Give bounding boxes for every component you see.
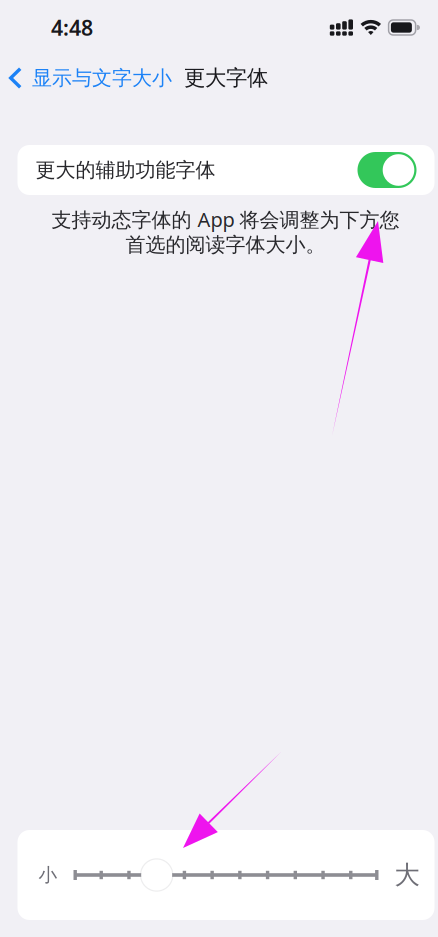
staticText: 更大字体 xyxy=(184,65,268,91)
button[interactable]: 更大的辅助功能字体 xyxy=(17,145,434,195)
staticText: 小 xyxy=(38,863,57,886)
button[interactable]: 显示与文字大小 xyxy=(0,56,178,100)
staticText: 首选的阅读字体大小。 xyxy=(125,233,325,257)
staticText: 大 xyxy=(394,859,419,890)
staticText: 4:48 xyxy=(51,13,93,42)
staticText: 显示与文字大小 xyxy=(32,66,172,90)
staticText: 支持动态字体的 App 将会调整为下方您 xyxy=(51,206,399,233)
button[interactable]: 更大的辅助功能字体 xyxy=(357,152,416,188)
staticText: 更大的辅助功能字体 xyxy=(35,158,215,182)
